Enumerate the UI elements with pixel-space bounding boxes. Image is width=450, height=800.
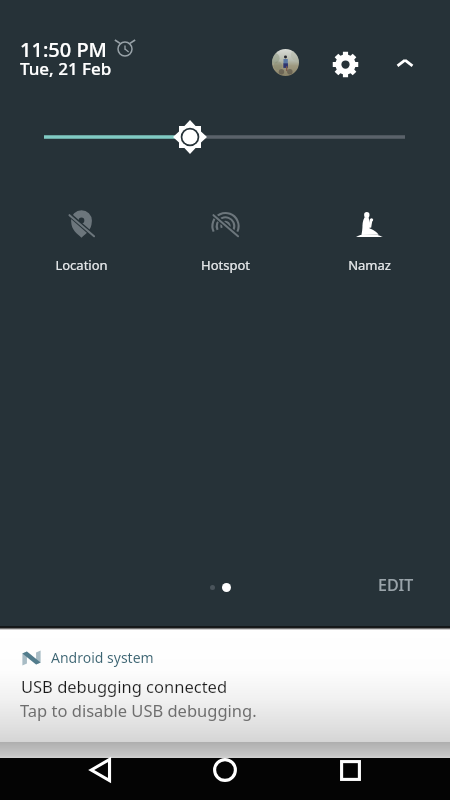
staticText: Hotspot xyxy=(201,256,250,274)
staticText: Location xyxy=(55,256,108,274)
button[interactable]: Recent apps xyxy=(326,758,374,782)
staticText: USB debugging connected xyxy=(21,675,228,697)
staticText: Android system xyxy=(51,648,154,667)
staticText: EDIT xyxy=(378,574,414,596)
staticText: Tue, 21 Feb xyxy=(20,57,112,80)
staticText: Tap to disable USB debugging. xyxy=(20,699,257,721)
button[interactable]: EDIT xyxy=(366,565,426,605)
button[interactable]: Settings xyxy=(326,45,364,83)
staticText: Namaz xyxy=(348,256,391,274)
button[interactable]: Android system xyxy=(0,627,450,743)
button[interactable]: Collapse xyxy=(386,44,424,82)
staticText: 11:50 PM xyxy=(20,36,107,63)
button[interactable]: Back xyxy=(76,758,124,782)
button[interactable]: User profile xyxy=(266,43,304,81)
button[interactable]: Namaz xyxy=(297,202,441,282)
button[interactable]: Hotspot xyxy=(153,202,297,282)
button[interactable]: Brightness xyxy=(0,117,450,157)
button[interactable]: Location xyxy=(9,202,153,282)
button[interactable]: Home xyxy=(201,758,249,782)
